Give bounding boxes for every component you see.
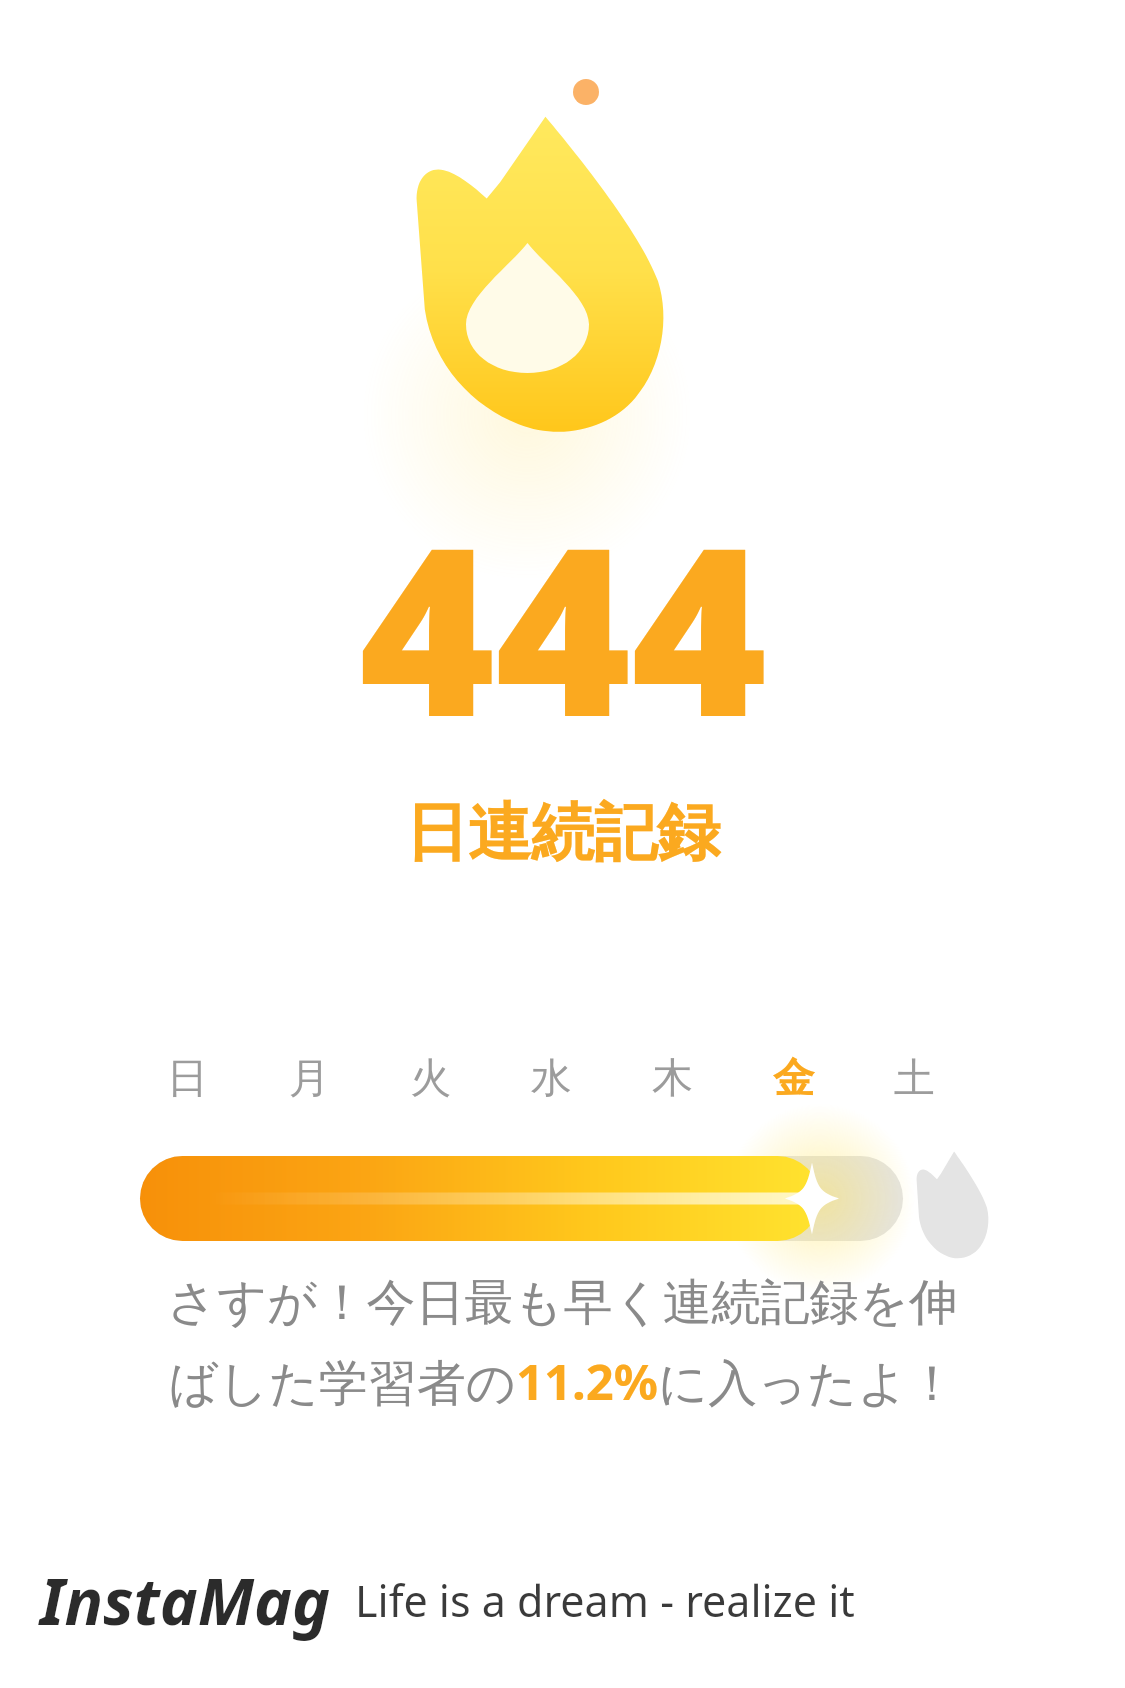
button[interactable]: 水 — [491, 1053, 612, 1105]
button[interactable]: Weekly streak progress — [0, 1140, 1125, 1270]
staticText: InstaMag — [40, 1557, 331, 1644]
staticText: 金 — [773, 1053, 814, 1105]
staticText: 木 — [652, 1053, 693, 1105]
staticText: 月 — [289, 1053, 330, 1105]
staticText: さすが！今日最も早く連続記録を伸 ばした学習者の11.2%に入ったよ！ — [0, 1272, 1125, 1415]
button[interactable]: 月 — [248, 1053, 370, 1105]
staticText: 火 — [410, 1053, 451, 1105]
staticText: 土 — [894, 1053, 935, 1105]
staticText: 日 — [167, 1053, 208, 1105]
button[interactable]: 火 — [370, 1053, 491, 1105]
button[interactable]: InstaMag — [40, 1557, 855, 1644]
button[interactable]: 土 — [854, 1053, 975, 1105]
button[interactable]: 金 — [733, 1053, 854, 1105]
staticText: Life is a dream - realize it — [355, 1571, 855, 1630]
button[interactable]: 日 — [126, 1053, 248, 1105]
staticText: 日連続記録 — [405, 793, 720, 872]
staticText: 水 — [531, 1053, 572, 1105]
button[interactable]: 木 — [612, 1053, 733, 1105]
staticText: 444 — [359, 468, 767, 784]
